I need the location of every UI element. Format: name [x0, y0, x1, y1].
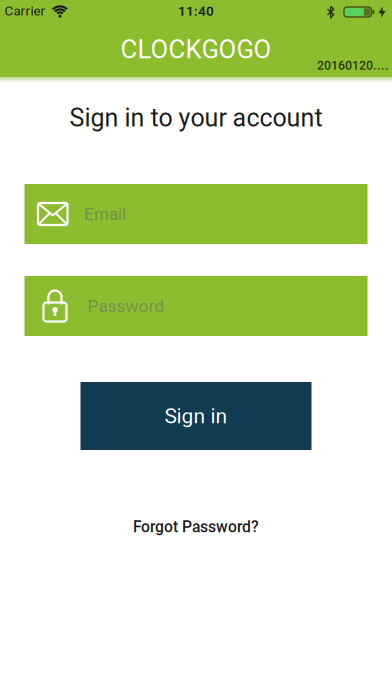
staticText: Carrier	[4, 3, 45, 19]
staticText: Email	[84, 204, 126, 224]
staticText: 11:40	[178, 3, 214, 19]
button[interactable]: Forgot Password?	[133, 518, 259, 536]
staticText: 20160120....	[317, 58, 389, 73]
button[interactable]: Sign in	[80, 382, 311, 450]
staticText: Password	[87, 296, 164, 316]
staticText: Forgot Password?	[133, 518, 259, 536]
staticText: Sign in	[164, 404, 227, 428]
button[interactable]: Email	[24, 184, 367, 244]
button[interactable]: Password	[24, 276, 367, 336]
staticText: CLOCKGOGO	[120, 34, 271, 65]
staticText: Sign in to your account	[69, 103, 322, 133]
